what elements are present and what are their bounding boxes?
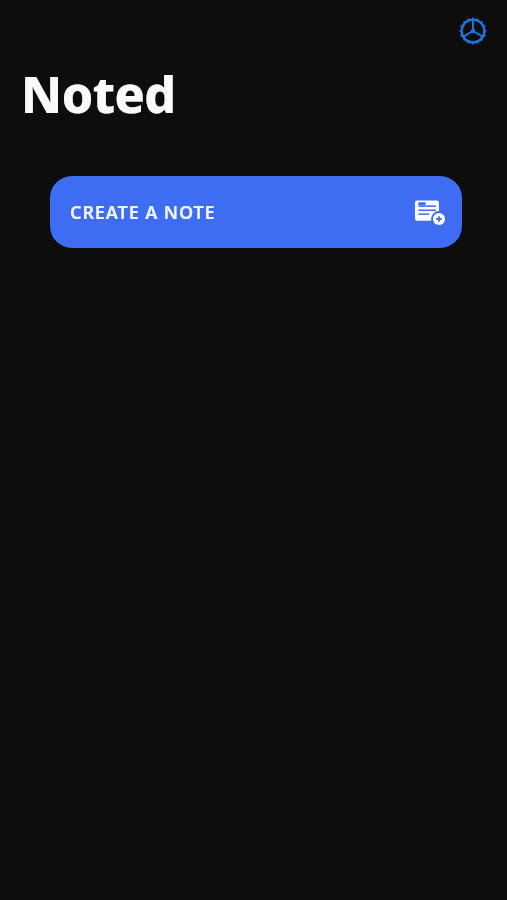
- staticText: CREATE A NOTE: [70, 200, 216, 225]
- staticText: Noted: [21, 60, 176, 128]
- button[interactable]: CREATE A NOTE: [50, 176, 462, 248]
- button[interactable]: Settings: [449, 7, 497, 55]
